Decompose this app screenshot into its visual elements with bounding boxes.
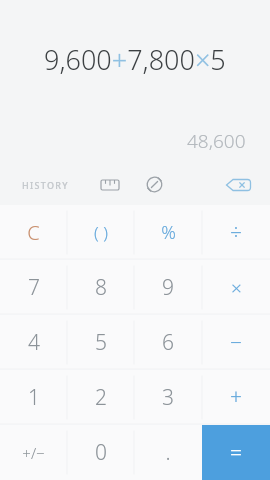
staticText: −: [230, 328, 242, 357]
button[interactable]: ×: [202, 260, 270, 315]
staticText: 8: [95, 273, 107, 302]
staticText: %: [161, 220, 176, 245]
button[interactable]: 1: [0, 370, 67, 425]
staticText: 9: [162, 273, 174, 302]
button[interactable]: 4: [0, 315, 67, 370]
staticText: ×: [231, 275, 242, 301]
staticText: +/−: [22, 443, 45, 463]
button[interactable]: Unit converter: [88, 164, 132, 205]
button[interactable]: −: [202, 315, 270, 370]
staticText: 3: [162, 383, 174, 412]
button[interactable]: Equals: [202, 425, 270, 480]
staticText: HISTORY: [22, 179, 69, 191]
button[interactable]: 5: [67, 315, 134, 370]
staticText: 4: [28, 328, 40, 357]
staticText: =: [230, 438, 242, 467]
staticText: 48,600: [187, 128, 246, 154]
staticText: C: [27, 219, 40, 246]
button[interactable]: 3: [134, 370, 202, 425]
staticText: 1: [28, 383, 40, 412]
button[interactable]: +/−: [0, 425, 67, 480]
button[interactable]: ÷: [202, 205, 270, 260]
button[interactable]: 2: [67, 370, 134, 425]
button[interactable]: Backspace: [206, 164, 270, 205]
staticText: 9,600+7,800×5: [44, 41, 226, 78]
staticText: 7: [28, 273, 40, 302]
button[interactable]: 0: [67, 425, 134, 480]
button[interactable]: HISTORY: [0, 164, 88, 205]
staticText: +: [230, 383, 242, 412]
button[interactable]: 8: [67, 260, 134, 315]
button[interactable]: ( ): [67, 205, 134, 260]
button[interactable]: 6: [134, 315, 202, 370]
staticText: ÷: [230, 218, 242, 247]
staticText: 0: [95, 438, 107, 467]
button[interactable]: 9: [134, 260, 202, 315]
button[interactable]: +: [202, 370, 270, 425]
button[interactable]: %: [134, 205, 202, 260]
button[interactable]: Currency converter: [132, 164, 176, 205]
staticText: ( ): [94, 221, 108, 244]
staticText: .: [165, 438, 171, 467]
staticText: 6: [162, 328, 174, 357]
button[interactable]: Clear: [0, 205, 67, 260]
button[interactable]: 7: [0, 260, 67, 315]
staticText: 5: [95, 328, 107, 357]
staticText: 2: [95, 383, 107, 412]
